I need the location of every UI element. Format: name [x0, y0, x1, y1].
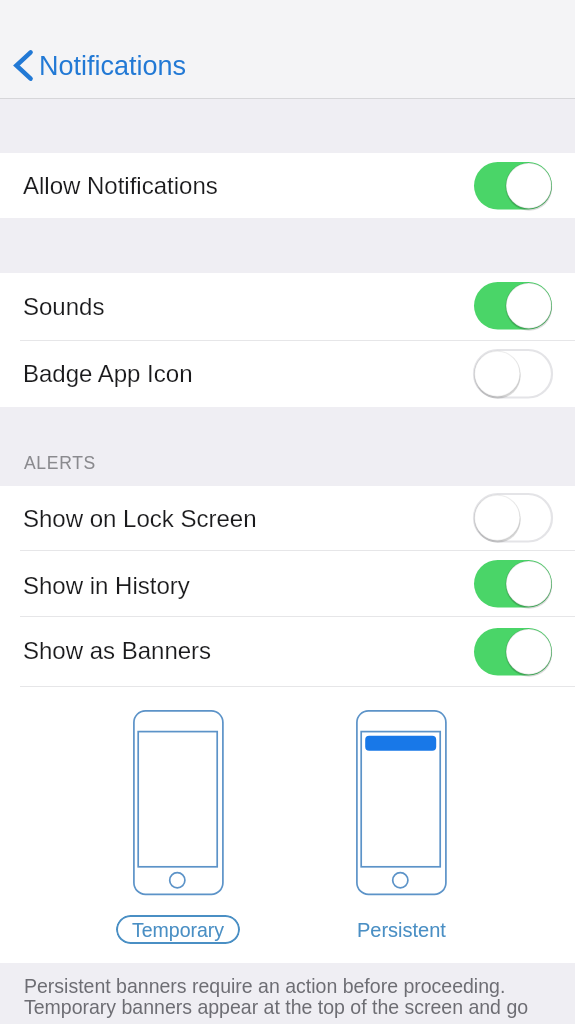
button[interactable]: Show as Banners on [474, 628, 552, 677]
button[interactable]: Show in History [0, 557, 575, 613]
button[interactable]: Allow Notifications [0, 157, 575, 213]
button[interactable]: Temporary banner style [133, 710, 224, 896]
staticText: Sounds [23, 293, 105, 320]
button[interactable]: Sounds [0, 278, 575, 334]
staticText: Show in History [23, 572, 190, 599]
staticText: ALERTS [24, 453, 96, 473]
button[interactable]: Allow Notifications on [474, 162, 552, 211]
staticText: Show as Banners [23, 637, 212, 664]
button[interactable]: Show on Lock Screen [0, 490, 575, 546]
button[interactable]: Temporary [116, 915, 240, 944]
button[interactable]: Badge App Icon [0, 345, 575, 401]
staticText: Persistent banners require an action bef… [24, 975, 529, 1018]
staticText: Temporary [132, 919, 225, 941]
button[interactable]: Persistent banner style [356, 710, 447, 896]
button[interactable]: Show as Banners [0, 622, 575, 678]
staticText: Badge App Icon [23, 360, 193, 387]
button[interactable]: Persistent [339, 915, 463, 944]
button[interactable]: Show in History on [474, 560, 552, 609]
button[interactable]: Badge App Icon off [474, 350, 552, 399]
button[interactable]: Back to Notifications [9, 48, 193, 83]
staticText: Persistent [357, 919, 446, 941]
button[interactable]: Sounds on [474, 282, 552, 331]
staticText: Show on Lock Screen [23, 505, 257, 532]
staticText: Allow Notifications [23, 172, 218, 199]
button[interactable]: Show on Lock Screen off [474, 494, 552, 543]
staticText: Notifications [39, 51, 187, 81]
